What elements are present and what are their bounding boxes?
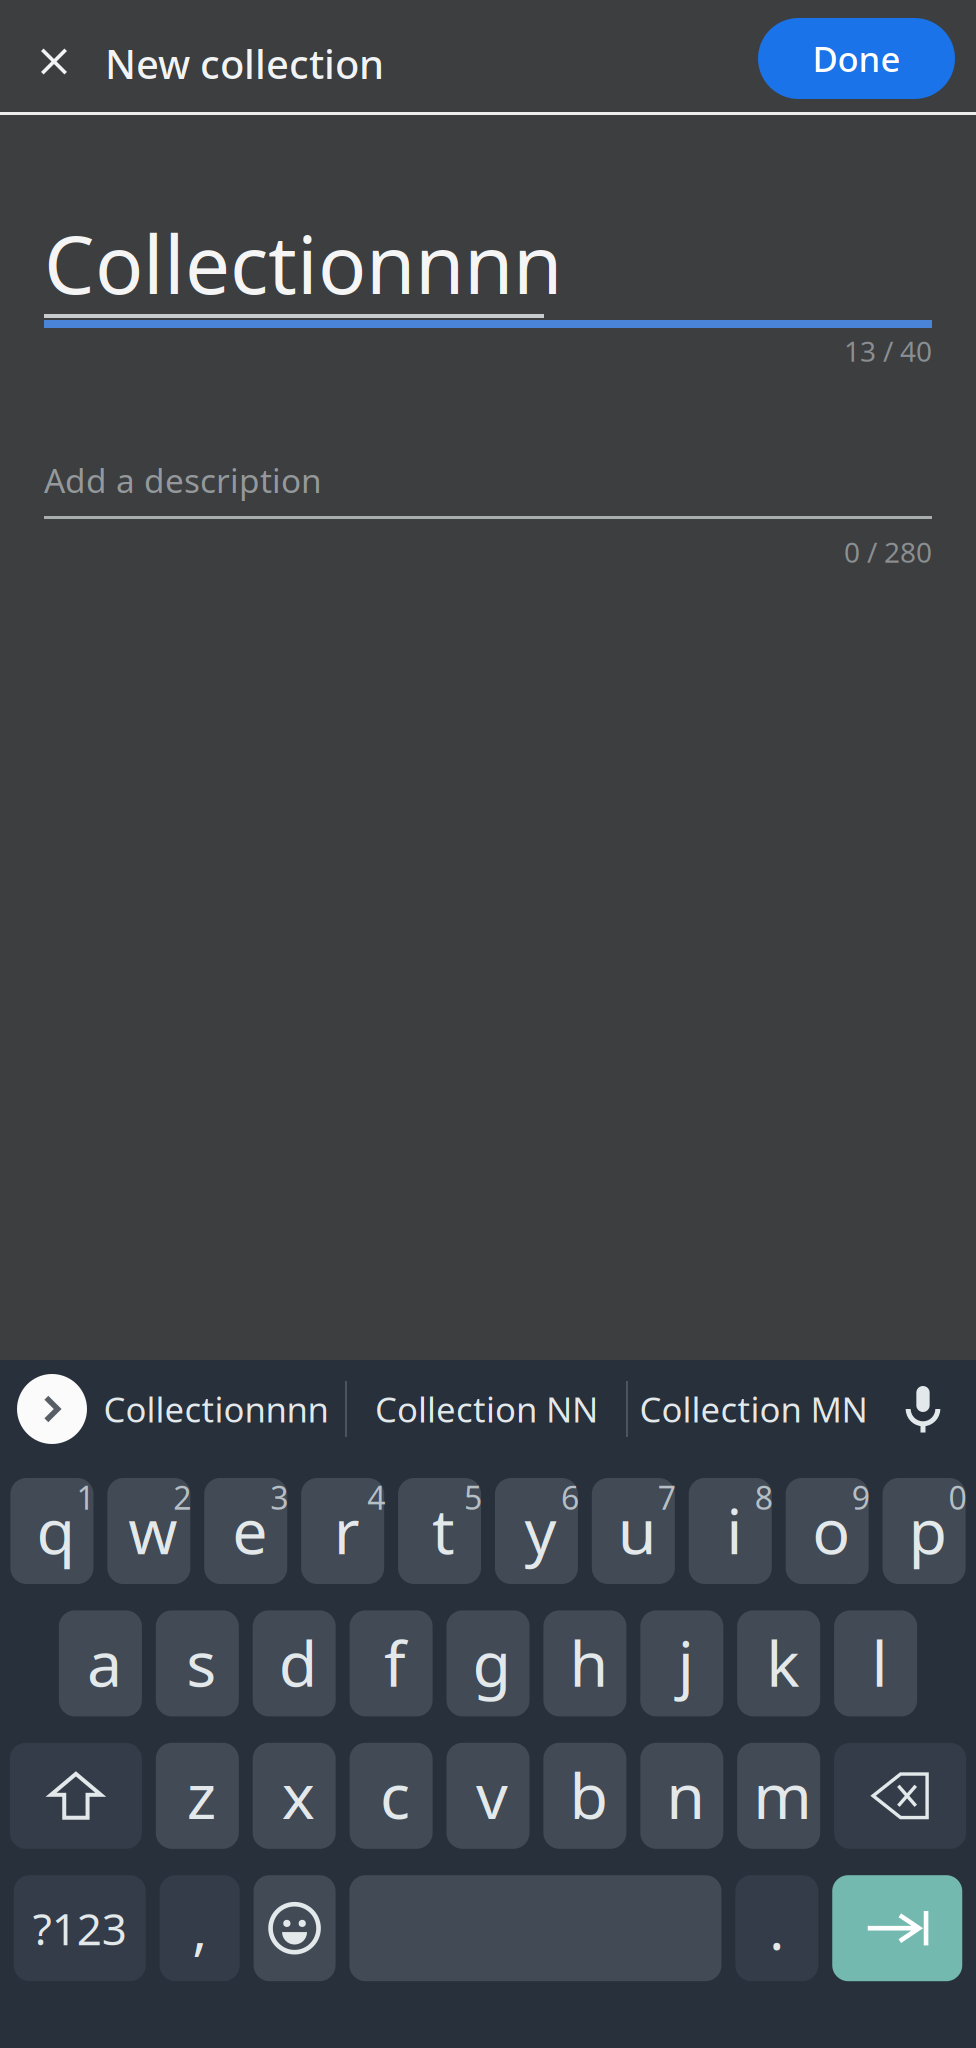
button[interactable]: Expand suggestions: [17, 1374, 87, 1444]
button[interactable]: Done: [758, 17, 955, 98]
staticText: 3: [270, 1476, 288, 1518]
button[interactable]: Backspace: [834, 1743, 966, 1849]
staticText: 6: [561, 1476, 579, 1518]
button[interactable]: 5: [398, 1478, 481, 1584]
button[interactable]: Period: [735, 1875, 818, 1981]
staticText: j: [678, 1621, 694, 1704]
button[interactable]: l: [834, 1610, 917, 1716]
staticText: o: [812, 1488, 850, 1572]
button[interactable]: d: [253, 1610, 336, 1716]
staticText: Collectionnnn: [44, 210, 562, 316]
staticText: 1: [76, 1476, 94, 1518]
staticText: d: [279, 1621, 318, 1704]
staticText: s: [186, 1621, 216, 1704]
staticText: f: [384, 1621, 406, 1704]
button[interactable]: c: [350, 1743, 433, 1849]
staticText: 5: [464, 1476, 482, 1518]
staticText: a: [87, 1621, 122, 1704]
button[interactable]: Shift: [10, 1743, 142, 1849]
staticText: k: [766, 1621, 799, 1704]
staticText: ,: [192, 1891, 207, 1965]
button[interactable]: g: [446, 1610, 529, 1716]
staticText: e: [232, 1488, 267, 1572]
button[interactable]: 4: [301, 1478, 384, 1584]
button[interactable]: k: [737, 1610, 820, 1716]
staticText: g: [472, 1621, 511, 1704]
staticText: r: [334, 1488, 360, 1572]
staticText: i: [726, 1488, 742, 1572]
staticText: q: [36, 1488, 75, 1572]
staticText: h: [569, 1621, 608, 1704]
button[interactable]: v: [446, 1743, 529, 1849]
button[interactable]: Close: [27, 0, 81, 115]
staticText: New collection: [105, 37, 384, 90]
staticText: w: [128, 1488, 177, 1572]
staticText: 9: [852, 1476, 870, 1518]
button[interactable]: 0: [882, 1478, 965, 1584]
staticText: Add a description: [44, 458, 322, 502]
button[interactable]: 6: [495, 1478, 578, 1584]
staticText: v: [476, 1753, 508, 1836]
button[interactable]: 3: [204, 1478, 287, 1584]
button[interactable]: Symbols: [14, 1875, 146, 1981]
button[interactable]: 7: [592, 1478, 675, 1584]
button[interactable]: Comma: [160, 1875, 240, 1981]
button[interactable]: Collectionnnn: [87, 1374, 345, 1444]
staticText: Collection MN: [639, 1386, 867, 1432]
staticText: Collection NN: [375, 1386, 598, 1432]
staticText: Done: [812, 35, 900, 81]
button[interactable]: Voice input: [887, 1373, 959, 1445]
staticText: .: [769, 1891, 784, 1965]
staticText: 0 / 280: [844, 533, 932, 571]
button[interactable]: x: [253, 1743, 336, 1849]
staticText: 0: [948, 1476, 966, 1518]
staticText: 7: [658, 1476, 676, 1518]
button[interactable]: b: [543, 1743, 626, 1849]
button[interactable]: j: [640, 1610, 723, 1716]
button[interactable]: z: [156, 1743, 239, 1849]
staticText: ?123: [33, 1899, 127, 1957]
button[interactable]: 8: [689, 1478, 772, 1584]
staticText: Collectionnnn: [103, 1386, 328, 1432]
staticText: t: [432, 1488, 455, 1572]
button[interactable]: n: [640, 1743, 723, 1849]
button[interactable]: m: [737, 1743, 820, 1849]
staticText: c: [380, 1753, 410, 1836]
staticText: 2: [173, 1476, 191, 1518]
button[interactable]: Enter: [832, 1875, 962, 1981]
staticText: u: [618, 1488, 657, 1572]
staticText: l: [872, 1621, 888, 1704]
button[interactable]: a: [59, 1610, 142, 1716]
staticText: p: [908, 1488, 947, 1572]
button[interactable]: f: [350, 1610, 433, 1716]
button[interactable]: 1: [10, 1478, 93, 1584]
button[interactable]: Emoji: [254, 1875, 336, 1981]
staticText: m: [753, 1753, 812, 1836]
staticText: 4: [367, 1476, 385, 1518]
button[interactable]: Collection MN: [628, 1374, 879, 1444]
button[interactable]: s: [156, 1610, 239, 1716]
button[interactable]: Collection NN: [347, 1374, 626, 1444]
staticText: 8: [755, 1476, 773, 1518]
staticText: 13 / 40: [844, 332, 932, 370]
staticText: n: [666, 1753, 705, 1836]
button[interactable]: h: [543, 1610, 626, 1716]
staticText: x: [282, 1753, 315, 1836]
button[interactable]: 2: [107, 1478, 190, 1584]
button[interactable]: 9: [786, 1478, 869, 1584]
staticText: y: [524, 1488, 556, 1572]
staticText: z: [187, 1753, 216, 1836]
staticText: b: [569, 1753, 608, 1836]
